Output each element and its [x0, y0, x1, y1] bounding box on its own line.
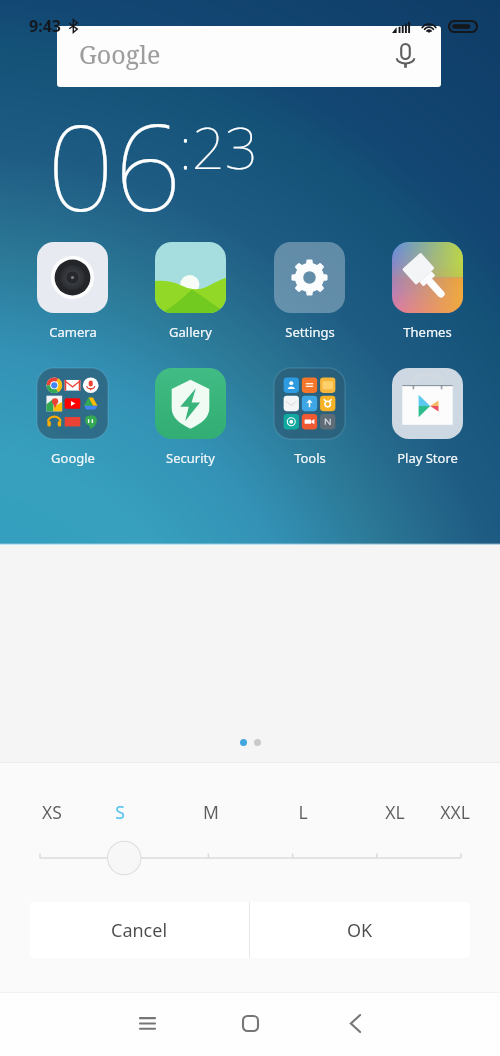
staticText: OK: [347, 918, 373, 943]
staticText: Gallery: [169, 323, 212, 341]
staticText: Google: [79, 37, 161, 71]
button[interactable]: Google: [25, 368, 120, 467]
button[interactable]: [0, 836, 500, 880]
button[interactable]: Cancel: [30, 902, 249, 958]
staticText: L: [298, 800, 308, 822]
staticText: Settings: [285, 323, 335, 341]
button[interactable]: Google: [57, 26, 441, 87]
staticText: Security: [166, 449, 215, 467]
button[interactable]: Home: [220, 993, 280, 1053]
button[interactable]: Themes: [380, 242, 475, 341]
button[interactable]: Camera: [25, 242, 120, 341]
button[interactable]: Back: [325, 993, 385, 1053]
staticText: S: [115, 800, 125, 822]
button[interactable]: S: [95, 800, 145, 822]
button[interactable]: Settings: [262, 242, 357, 341]
button[interactable]: OK: [250, 902, 470, 958]
staticText: Cancel: [111, 918, 168, 943]
button[interactable]: Menu: [117, 993, 177, 1053]
button[interactable]: M: [186, 800, 236, 822]
staticText: 06: [47, 85, 182, 246]
button[interactable]: XXL: [430, 800, 480, 822]
staticText: M: [203, 800, 219, 822]
staticText: Themes: [403, 323, 452, 341]
button[interactable]: Gallery: [143, 242, 238, 341]
staticText: XXL: [440, 800, 470, 822]
staticText: Tools: [294, 449, 326, 467]
staticText: 9:43: [29, 15, 61, 37]
button[interactable]: Play Store: [380, 368, 475, 467]
button[interactable]: Security: [143, 368, 238, 467]
staticText: Camera: [49, 323, 97, 341]
staticText: XL: [385, 800, 405, 822]
staticText: XS: [42, 800, 62, 822]
button[interactable]: XL: [370, 800, 420, 822]
button[interactable]: XS: [27, 800, 77, 822]
staticText: Play Store: [397, 449, 458, 467]
button[interactable]: L: [278, 800, 328, 822]
staticText: :23: [179, 107, 258, 186]
button[interactable]: Tools: [262, 368, 357, 467]
staticText: Google: [51, 449, 95, 467]
